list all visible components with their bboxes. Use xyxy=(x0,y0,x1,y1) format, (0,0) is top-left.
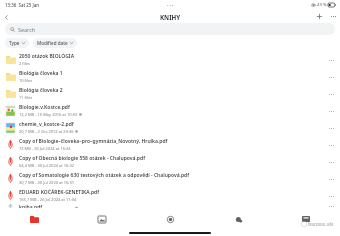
staticText: bazos.sk xyxy=(308,220,334,228)
button[interactable]: Item options xyxy=(325,54,337,66)
button[interactable]: Files xyxy=(0,208,68,230)
staticText: 12,2 MB - 15 May 2016 at 10:53 xyxy=(19,112,78,117)
button[interactable]: Item options xyxy=(325,173,337,185)
staticText: 13:36 Sat 25 Jan xyxy=(5,2,39,8)
button[interactable]: 2050 otázok BIOLÓGIA xyxy=(0,51,340,68)
staticText: Search xyxy=(18,26,36,33)
button[interactable]: More options xyxy=(326,10,340,23)
staticText: Modified date xyxy=(37,40,68,46)
button[interactable]: Item options xyxy=(325,190,337,202)
button[interactable]: Item options xyxy=(325,204,337,208)
staticText: Copy of Obecná biologie 558 otázek - Cha… xyxy=(19,155,145,162)
staticText: 20,7 MB - 2 Oct 2012 at 20:36 xyxy=(19,129,74,134)
staticText: KNIHY xyxy=(160,13,181,21)
button[interactable]: Copy of Somatologie 630 testových otázek… xyxy=(0,170,340,187)
button[interactable]: Type xyxy=(5,38,29,48)
button[interactable]: Biológia človeka 1 xyxy=(0,68,340,85)
staticText: Copy of Somatologie 630 testových otázek… xyxy=(19,172,190,179)
staticText: 165,7 MB - 26 Jul 2024 at 11:04 xyxy=(19,197,77,202)
button[interactable]: Item options xyxy=(325,88,337,100)
button[interactable]: Item options xyxy=(325,122,337,134)
staticText: 30,7 MB - 30 Jul 2024 at 16:31 xyxy=(19,180,74,185)
button[interactable]: Biologie.v.Kostce.pdf xyxy=(0,102,340,119)
button[interactable]: chemie_v_kostce-2.pdf xyxy=(0,119,340,136)
staticText: 2 files xyxy=(19,61,30,66)
staticText: EDUARD KOČÁREK-GENETIKA.pdf xyxy=(19,189,100,196)
button[interactable]: Search xyxy=(204,208,272,230)
button[interactable]: Back xyxy=(0,11,12,23)
staticText: 11 files xyxy=(19,95,33,100)
staticText: Type xyxy=(9,40,20,46)
staticText: kniha.pdf xyxy=(19,204,43,208)
button[interactable]: EDUARD KOČÁREK-GENETIKA.pdf xyxy=(0,187,340,204)
staticText: 10 files xyxy=(19,78,33,83)
staticText: Copy of Biologie–človeka–pro–gymnázia_No… xyxy=(19,138,168,145)
button[interactable]: Item options xyxy=(325,105,337,117)
staticText: 2050 otázok BIOLÓGIA xyxy=(19,53,75,60)
staticText: Biológia človeka 2 xyxy=(19,87,63,94)
button[interactable]: Copy of Obecná biologie 558 otázek - Cha… xyxy=(0,153,340,170)
button[interactable]: Modified date xyxy=(33,38,77,48)
button[interactable]: Item options xyxy=(325,139,337,151)
staticText: 64,4 MB - 30 Jul 2024 at 16:32 xyxy=(19,163,74,168)
staticText: Biológia človeka 1 xyxy=(19,70,63,77)
button[interactable]: Biológia človeka 2 xyxy=(0,85,340,102)
button[interactable]: Shared xyxy=(136,208,204,230)
staticText: 72 MB - 30 Jul 2024 at 16:34 xyxy=(19,146,71,151)
staticText: • • • xyxy=(167,3,174,8)
button[interactable]: kniha.pdf xyxy=(0,204,340,208)
button[interactable]: Item options xyxy=(325,71,337,83)
button[interactable]: Item options xyxy=(325,156,337,168)
staticText: Biologie.v.Kostce.pdf xyxy=(19,104,70,111)
button[interactable]: Search xyxy=(5,23,335,35)
button[interactable]: Photos xyxy=(68,208,136,230)
button[interactable]: Copy of Biologie–človeka–pro–gymnázia_No… xyxy=(0,136,340,153)
button[interactable]: Recent xyxy=(272,208,340,230)
staticText: chemie_v_kostce-2.pdf xyxy=(19,121,74,128)
button[interactable]: Add xyxy=(312,10,326,23)
staticText: 23 % xyxy=(317,2,327,8)
